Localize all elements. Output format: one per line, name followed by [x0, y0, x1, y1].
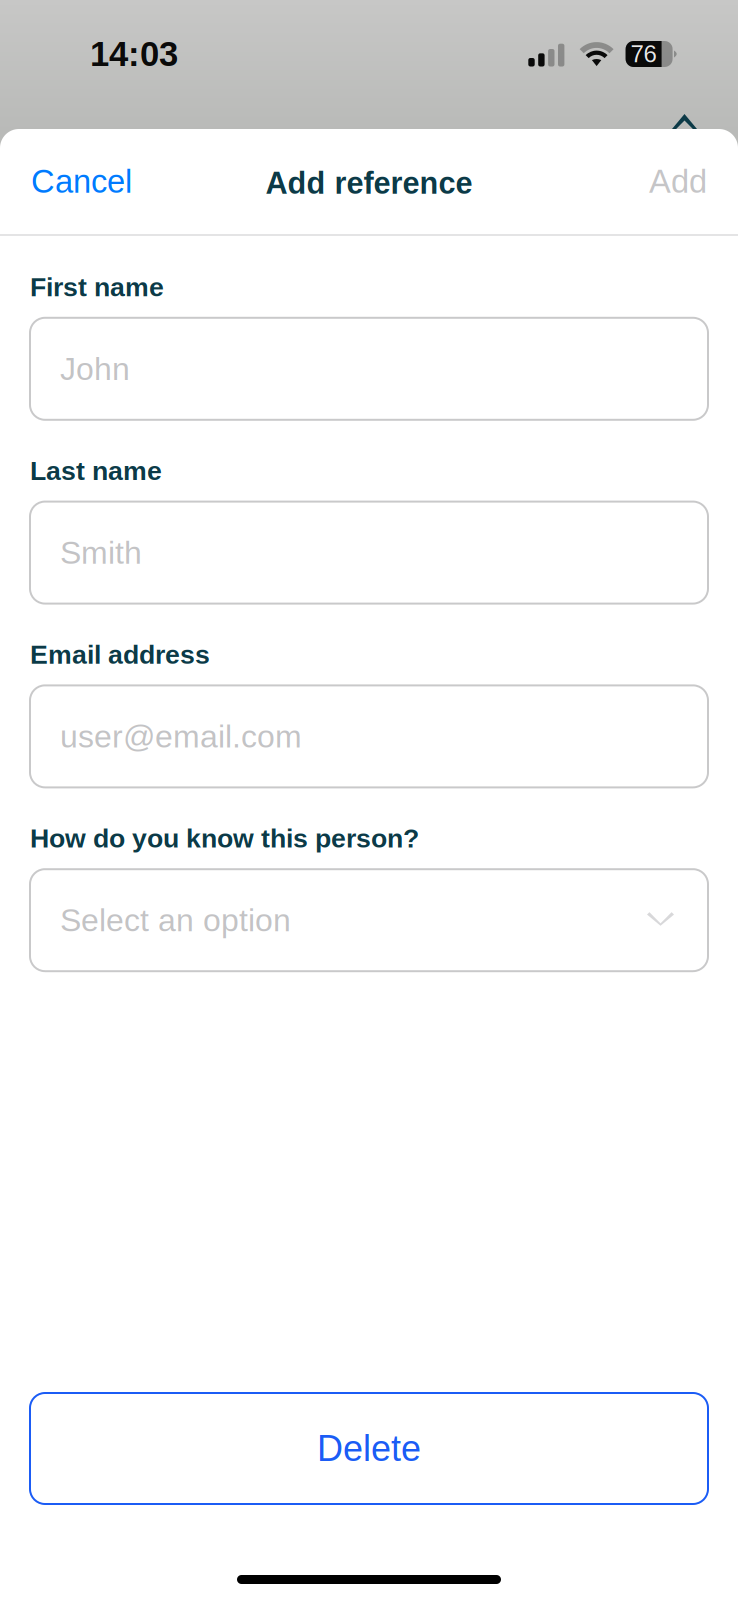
button[interactable]: Cancel: [0, 129, 154, 234]
button[interactable]: Add: [627, 129, 738, 234]
staticText: Cancel: [31, 163, 132, 200]
staticText: Add: [649, 163, 707, 200]
staticText: Select an option: [60, 902, 291, 938]
staticText: 14:03: [90, 35, 178, 73]
staticText: Email address: [30, 640, 210, 669]
staticText: Add reference: [265, 166, 472, 200]
button[interactable]: Last name: [30, 502, 708, 604]
button[interactable]: Email address: [30, 685, 708, 787]
button[interactable]: How do you know this person?: [30, 869, 708, 971]
staticText: Smith: [60, 535, 142, 570]
staticText: John: [60, 351, 130, 387]
staticText: First name: [30, 272, 164, 302]
button[interactable]: Delete: [30, 1393, 708, 1504]
button[interactable]: First name: [30, 318, 708, 420]
staticText: How do you know this person?: [30, 823, 419, 853]
staticText: Delete: [317, 1428, 421, 1469]
staticText: Last name: [30, 456, 162, 486]
staticText: 76: [631, 41, 657, 67]
staticText: user@email.com: [60, 718, 302, 754]
